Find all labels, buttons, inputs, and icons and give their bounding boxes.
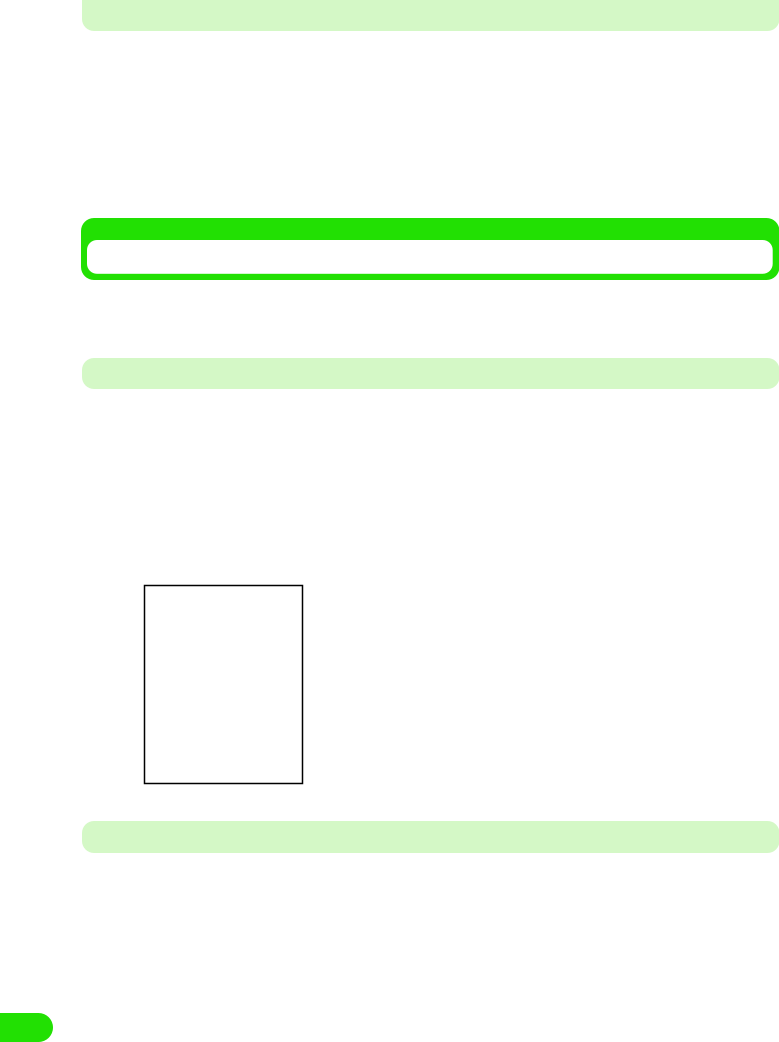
- button[interactable]: Search field: [81, 218, 779, 280]
- button[interactable]: Tag: [0, 1013, 53, 1042]
- button[interactable]: Highlighted text: [82, 358, 779, 389]
- button[interactable]: Highlighted text: [82, 821, 779, 853]
